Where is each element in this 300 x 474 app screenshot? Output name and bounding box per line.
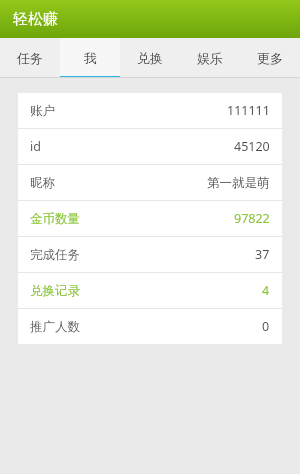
button[interactable]: 兑换	[120, 38, 180, 78]
staticText: 轻松赚	[13, 10, 58, 29]
button[interactable]: 推广人数	[18, 309, 282, 344]
staticText: 37	[255, 246, 270, 263]
staticText: 任务	[17, 50, 43, 66]
staticText: 4	[262, 282, 270, 299]
staticText: 兑换记录	[30, 283, 80, 299]
staticText: 我	[84, 50, 97, 66]
button[interactable]: 我	[60, 38, 120, 78]
staticText: 推广人数	[30, 319, 80, 335]
staticText: 45120	[234, 138, 270, 155]
staticText: 金币数量	[30, 211, 80, 227]
button[interactable]: 更多	[240, 38, 300, 78]
button[interactable]: 娱乐	[180, 38, 240, 78]
button[interactable]: 账户	[18, 93, 282, 128]
staticText: id	[30, 138, 41, 155]
staticText: 97822	[234, 210, 270, 227]
button[interactable]: 任务	[0, 38, 60, 78]
button[interactable]: 金币数量	[18, 201, 282, 236]
staticText: 账户	[30, 103, 55, 119]
button[interactable]: id	[18, 129, 282, 164]
button[interactable]: 兑换记录	[18, 273, 282, 308]
staticText: 111111	[227, 102, 270, 119]
button[interactable]: 昵称	[18, 165, 282, 200]
staticText: 兑换	[137, 50, 163, 66]
staticText: 娱乐	[197, 50, 223, 66]
staticText: 昵称	[30, 175, 55, 191]
button[interactable]: 完成任务	[18, 237, 282, 272]
staticText: 第一就是萌	[207, 175, 270, 191]
staticText: 更多	[257, 50, 283, 66]
staticText: 完成任务	[30, 247, 80, 263]
staticText: 0	[262, 318, 270, 335]
